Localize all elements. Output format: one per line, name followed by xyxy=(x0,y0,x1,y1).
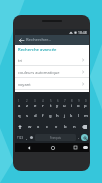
button[interactable]: t xyxy=(47,102,54,110)
button[interactable]: j xyxy=(61,110,68,121)
staticText: b xyxy=(64,124,67,130)
button[interactable]: n xyxy=(70,121,79,132)
staticText: u xyxy=(63,103,66,109)
staticText: e xyxy=(34,103,37,109)
button[interactable]: d xyxy=(31,110,39,121)
staticText: 3 xyxy=(34,99,36,103)
button[interactable]: Recents xyxy=(72,144,79,151)
staticText: c xyxy=(46,124,49,130)
button[interactable]: h xyxy=(54,110,61,121)
button[interactable]: v xyxy=(52,121,61,132)
button[interactable]: w xyxy=(25,121,34,132)
staticText: voyant xyxy=(18,82,31,87)
button[interactable]: l xyxy=(75,110,82,121)
button[interactable]: u xyxy=(61,102,68,110)
staticText: Recherche avancée xyxy=(18,47,57,53)
staticText: 9 xyxy=(78,99,80,103)
staticText: w xyxy=(28,124,32,130)
staticText: q xyxy=(18,113,21,119)
staticText: 1 xyxy=(18,99,20,103)
button[interactable]: e xyxy=(31,102,39,110)
button[interactable]: couleurs automatique xyxy=(15,66,89,78)
staticText: Rechercher... xyxy=(26,37,51,43)
staticText: 2 xyxy=(26,99,28,103)
button[interactable]: p xyxy=(82,102,89,110)
staticText: tri xyxy=(18,58,23,63)
button[interactable]: Search xyxy=(81,134,88,141)
staticText: t xyxy=(50,103,52,109)
staticText: ?123 xyxy=(17,136,24,140)
staticText: n xyxy=(73,124,76,130)
staticText: 8 xyxy=(71,99,73,103)
staticText: 4 xyxy=(42,99,44,103)
staticText: d xyxy=(34,113,37,119)
button[interactable]: g xyxy=(47,110,54,121)
button[interactable]: a xyxy=(15,102,23,110)
staticText: x xyxy=(37,124,40,130)
button[interactable]: b xyxy=(61,121,70,132)
button[interactable]: z xyxy=(23,102,31,110)
button[interactable]: tri xyxy=(15,54,89,66)
staticText: Français xyxy=(50,136,61,140)
button[interactable]: m xyxy=(82,110,89,121)
staticText: i xyxy=(71,103,73,109)
button[interactable]: o xyxy=(75,102,82,110)
button[interactable]: Emoji xyxy=(28,132,34,143)
staticText: . xyxy=(78,135,80,140)
button[interactable]: , xyxy=(24,132,28,143)
staticText: j xyxy=(64,113,66,119)
button[interactable]: q xyxy=(15,110,23,121)
button[interactable]: voyant xyxy=(15,78,89,90)
button[interactable]: Back xyxy=(25,144,32,151)
staticText: a xyxy=(18,103,21,109)
staticText: k xyxy=(70,113,73,119)
button[interactable]: x xyxy=(34,121,43,132)
button[interactable]: Shift xyxy=(15,121,25,132)
button[interactable]: f xyxy=(39,110,47,121)
staticText: l xyxy=(78,113,80,119)
button[interactable]: s xyxy=(23,110,31,121)
staticText: 0 xyxy=(85,99,87,103)
staticText: o xyxy=(77,103,80,109)
staticText: h xyxy=(56,113,59,119)
button[interactable]: Home xyxy=(49,144,56,151)
staticText: , xyxy=(26,135,27,140)
staticText: r xyxy=(42,103,44,109)
staticText: f xyxy=(42,113,44,119)
staticText: 5 xyxy=(50,99,52,103)
staticText: 18:48 xyxy=(78,30,87,35)
button[interactable]: Backspace xyxy=(79,121,89,132)
button[interactable]: Back xyxy=(17,36,25,44)
staticText: couleurs automatique xyxy=(18,70,60,75)
button[interactable]: k xyxy=(68,110,75,121)
button[interactable]: Français xyxy=(35,134,76,141)
staticText: 7 xyxy=(64,99,66,103)
button[interactable]: c xyxy=(43,121,52,132)
staticText: 6 xyxy=(57,99,59,103)
staticText: y xyxy=(56,103,59,109)
staticText: p xyxy=(84,103,87,109)
staticText: s xyxy=(26,113,29,119)
button[interactable]: . xyxy=(77,132,81,143)
button[interactable]: r xyxy=(39,102,47,110)
button[interactable]: y xyxy=(54,102,61,110)
staticText: m xyxy=(84,113,88,119)
button[interactable]: ?123 xyxy=(16,132,24,143)
staticText: v xyxy=(55,124,58,130)
staticText: z xyxy=(26,103,28,109)
staticText: g xyxy=(49,113,52,119)
button[interactable]: i xyxy=(68,102,75,110)
